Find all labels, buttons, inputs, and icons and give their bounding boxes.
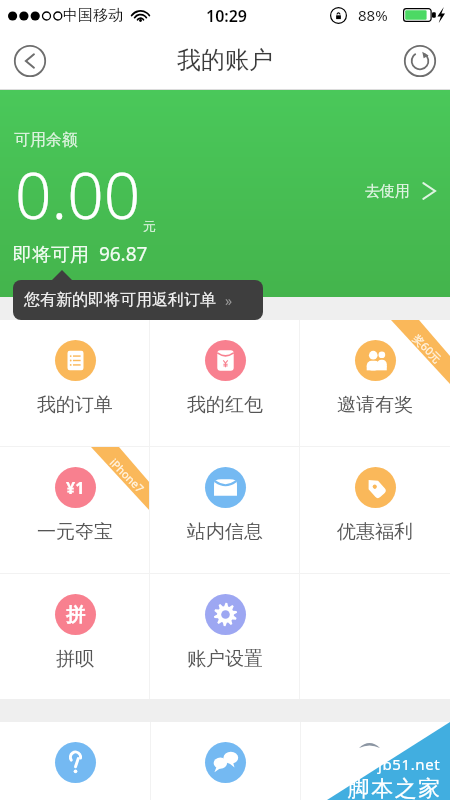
staticText: 我的红包 [187, 393, 263, 417]
button[interactable] [301, 722, 450, 800]
button[interactable]: 拼 [0, 574, 150, 699]
staticText: 中国移动 [63, 6, 123, 25]
staticText: 奖60元 [410, 331, 445, 366]
staticText: » [225, 291, 233, 310]
staticText: 去使用 [365, 182, 410, 201]
staticText: 账户设置 [187, 647, 263, 671]
staticText: 0.00 [15, 151, 141, 238]
staticText: 站内信息 [187, 520, 263, 544]
staticText: 一元夺宝 [37, 520, 113, 544]
staticText: 您有新的即将可用返利订单 [24, 290, 216, 310]
staticText: iPhone7 [107, 455, 148, 496]
button[interactable]: Refresh [403, 44, 437, 78]
staticText: 优惠福利 [337, 520, 413, 544]
button[interactable]: 账户设置 [150, 574, 300, 699]
button[interactable]: ¥1 [0, 447, 150, 573]
staticText: 即将可用 96.87 [13, 241, 148, 267]
staticText: 拼呗 [56, 647, 94, 671]
button[interactable]: Chat [151, 722, 300, 800]
staticText: ¥1 [66, 477, 85, 499]
button[interactable]: 我的订单 [0, 320, 150, 446]
staticText: 邀请有奖 [337, 393, 413, 417]
staticText: 拼 [66, 603, 85, 627]
button[interactable]: 我的红包 [150, 320, 300, 446]
staticText: 我的订单 [37, 393, 113, 417]
button[interactable]: 站内信息 [150, 447, 300, 573]
button[interactable]: 优惠福利 [300, 447, 450, 573]
staticText: 可用余额 [14, 130, 78, 150]
staticText: 10:29 [206, 5, 248, 27]
staticText: 88% [358, 5, 388, 25]
button[interactable]: 去使用 [365, 177, 439, 205]
button[interactable]: 邀请有奖 [300, 320, 450, 446]
staticText: jb51.net [378, 754, 441, 774]
button[interactable]: Help [0, 722, 150, 800]
staticText: 脚本之家 [347, 775, 441, 800]
staticText: 元 [143, 218, 156, 234]
button[interactable]: Back [13, 44, 47, 78]
staticText: 我的账户 [177, 45, 273, 75]
